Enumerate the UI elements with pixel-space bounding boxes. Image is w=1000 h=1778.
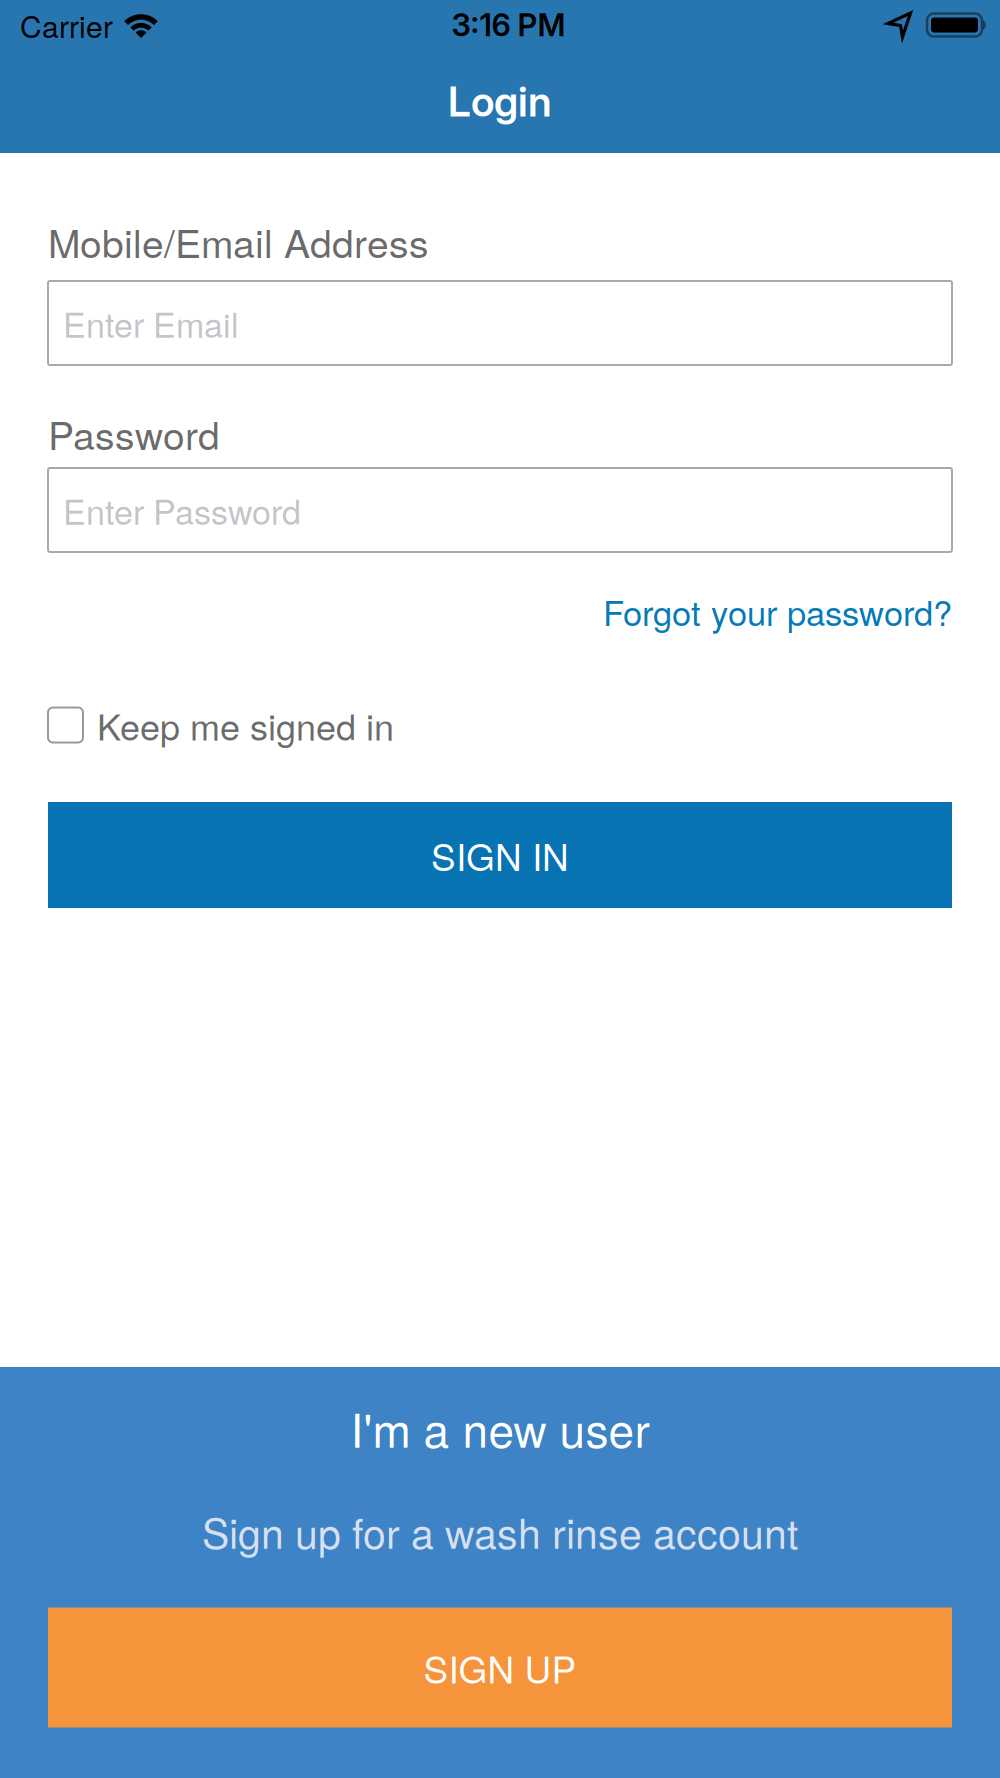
staticText: Sign up for a wash rinse account	[202, 1502, 798, 1560]
secureTextField[interactable]: Enter Password	[48, 495, 952, 525]
staticText: 3:16 PM	[451, 6, 565, 44]
textField[interactable]: Enter Email	[48, 308, 952, 338]
staticText: Carrier	[20, 3, 113, 46]
staticText: Password	[48, 405, 220, 461]
staticText: SIGN UP	[423, 1641, 576, 1694]
staticText: SIGN IN	[431, 828, 569, 881]
button[interactable]: Keep me signed in	[48, 702, 952, 748]
staticText: Forgot your password?	[603, 586, 952, 636]
staticText: Enter Email	[63, 299, 239, 347]
staticText: Mobile/Email Address	[48, 213, 429, 269]
staticText: Login	[448, 77, 552, 126]
staticText: I'm a new user	[350, 1395, 649, 1461]
button[interactable]: SIGN IN	[48, 802, 952, 908]
staticText: Keep me signed in	[97, 699, 394, 751]
button[interactable]: Forgot your password?	[603, 586, 952, 636]
staticText: Enter Email	[48, 308, 170, 338]
staticText: Enter Password	[63, 486, 301, 534]
button[interactable]: SIGN UP	[48, 1607, 952, 1727]
staticText: Enter Password	[48, 495, 215, 525]
